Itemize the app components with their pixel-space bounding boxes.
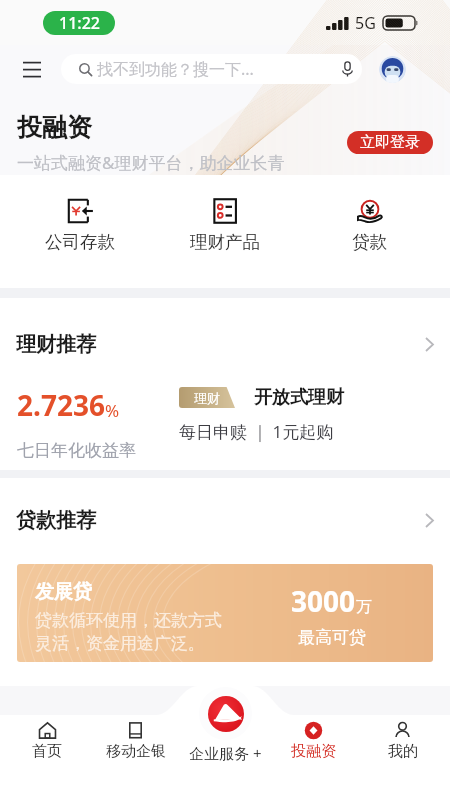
staticText: 开放式理财 (254, 386, 344, 409)
staticText: 贷款 (352, 231, 387, 253)
staticText: 投融资 (17, 112, 92, 143)
staticText: 理财产品 (190, 231, 260, 253)
staticText: 移动企银 (106, 742, 166, 761)
button[interactable]: 发展贷 (17, 564, 433, 662)
button[interactable]: 理财产品 (152, 175, 297, 288)
button[interactable]: 投融资 (269, 715, 358, 761)
staticText: 七日年化收益率 (17, 440, 136, 461)
staticText: 灵活，资金用途广泛。 (35, 633, 205, 654)
button[interactable]: 贷款 (297, 175, 442, 288)
staticText: 理财推荐 (16, 332, 96, 357)
staticText: 投融资 (291, 742, 336, 761)
staticText: 万 (356, 597, 372, 617)
staticText: 贷款推荐 (16, 508, 96, 533)
button[interactable]: 公司存款 (8, 175, 152, 288)
button[interactable]: 立即登录 (347, 131, 433, 154)
staticText: 公司存款 (45, 231, 115, 253)
staticText: 企业服务 + (189, 743, 262, 763)
staticText: 立即登录 (360, 133, 420, 152)
button[interactable]: 企业服务 (199, 687, 252, 740)
staticText: 首页 (32, 742, 62, 761)
button[interactable]: 我的 (358, 715, 447, 761)
staticText: 每日申赎 ｜ 1元起购 (179, 420, 334, 443)
button[interactable]: 找不到功能？搜一下... (61, 54, 362, 84)
button[interactable]: 贷款推荐 (0, 508, 450, 533)
staticText: 5G (355, 12, 376, 34)
staticText: 3000 (291, 582, 356, 620)
button[interactable]: 理财推荐 (0, 332, 450, 357)
staticText: 发展贷 (35, 580, 92, 604)
button[interactable]: 移动企银 (91, 715, 180, 761)
staticText: 找不到功能？搜一下... (97, 58, 254, 80)
button[interactable]: 首页 (3, 715, 91, 761)
button[interactable]: AI assistant (379, 56, 406, 83)
staticText: % (105, 399, 120, 422)
staticText: 最高可贷 (298, 627, 366, 648)
button[interactable]: Menu (21, 54, 43, 84)
staticText: 理财 (194, 390, 220, 406)
staticText: 贷款循环使用，还款方式 (35, 610, 222, 631)
staticText: 我的 (388, 742, 418, 761)
staticText: 一站式融资&理财平台，助企业长青 (17, 151, 285, 174)
staticText: 2.7236 (17, 386, 105, 424)
staticText: 11:22 (59, 12, 100, 34)
